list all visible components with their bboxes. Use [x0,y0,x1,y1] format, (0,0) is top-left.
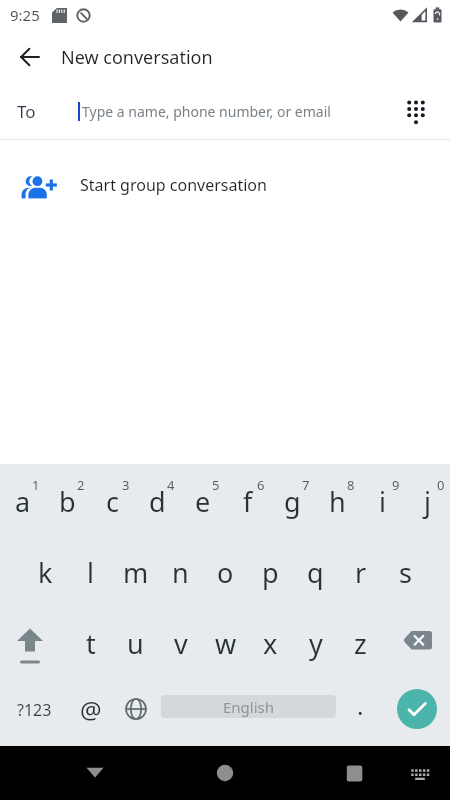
button[interactable] [113,677,158,746]
staticText: k [38,554,53,591]
staticText: f [243,483,253,520]
staticText: w [215,625,237,662]
staticText: Start group conversation [80,174,267,196]
staticText: j [424,483,431,520]
staticText: To [17,100,36,123]
staticText: b [59,483,76,520]
button[interactable]: z [338,606,383,677]
staticText: r [355,554,367,591]
staticText: 5 [212,476,220,494]
staticText: 6 [257,476,265,494]
button[interactable]: h [315,464,360,535]
button[interactable]: t [68,606,113,677]
staticText: 7 [302,476,310,494]
staticText: ?123 [17,699,52,721]
button[interactable] [398,94,434,130]
staticText: t [86,625,96,662]
staticText: @ [80,693,102,726]
button[interactable]: English [158,677,338,746]
button[interactable]: l [68,535,113,606]
staticText: o [217,554,234,591]
staticText: 8 [347,476,355,494]
staticText: English [223,697,275,717]
button[interactable]: @ [68,677,113,746]
button[interactable]: y [293,606,338,677]
button[interactable]: w [203,606,248,677]
button[interactable]: g [270,464,315,535]
staticText: New conversation [61,45,213,70]
staticText: d [149,483,166,520]
staticText: p [262,554,279,591]
button[interactable]: v [158,606,203,677]
button[interactable]: f [225,464,270,535]
staticText: 4 [167,476,175,494]
button[interactable] [397,689,437,729]
button[interactable]: x [248,606,293,677]
staticText: q [307,554,324,591]
button[interactable]: To [0,84,450,139]
button[interactable]: b [45,464,90,535]
button[interactable] [402,755,438,791]
button[interactable]: a [0,464,45,535]
staticText: 9:25 [10,5,40,25]
button[interactable]: k [23,535,68,606]
staticText: y [309,625,323,662]
staticText: 1 [32,476,40,494]
staticText: u [127,625,144,662]
button[interactable]: m [113,535,158,606]
button[interactable] [383,606,450,677]
button[interactable]: u [113,606,158,677]
button[interactable]: j [405,464,450,535]
staticText: l [87,554,94,591]
button[interactable]: Start group conversation [0,140,450,230]
button[interactable]: o [203,535,248,606]
staticText: x [263,625,278,662]
staticText: g [284,483,301,520]
button[interactable] [0,606,68,677]
staticText: . [357,689,364,722]
staticText: 0 [437,476,445,494]
staticText: i [379,483,386,520]
staticText: v [174,625,188,662]
button[interactable]: p [248,535,293,606]
button[interactable]: d [135,464,180,535]
staticText: m [123,554,149,591]
button[interactable]: c [90,464,135,535]
button[interactable] [205,753,245,793]
staticText: s [399,554,412,591]
button[interactable]: s [383,535,427,606]
staticText: n [172,554,189,591]
button[interactable]: n [158,535,203,606]
staticText: z [354,625,367,662]
staticText: c [106,483,119,520]
staticText: a [15,483,31,520]
button[interactable] [12,39,48,75]
button[interactable]: . [338,677,383,746]
staticText: e [195,483,211,520]
button[interactable]: r [338,535,383,606]
button[interactable]: e [180,464,225,535]
staticText: 2 [77,476,85,494]
button[interactable]: i [360,464,405,535]
button[interactable] [75,753,115,793]
button[interactable]: ?123 [0,677,68,746]
staticText: 3 [122,476,130,494]
button[interactable] [334,753,374,793]
staticText: 9 [392,476,400,494]
button[interactable]: q [293,535,338,606]
staticText: Type a name, phone number, or email [82,102,331,121]
staticText: h [329,483,346,520]
